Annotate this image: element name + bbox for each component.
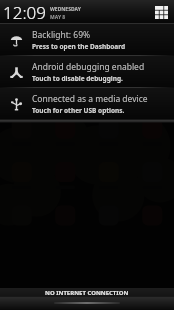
staticText: 12:09 <box>3 1 46 24</box>
button[interactable]: Android debugging enabled <box>0 56 174 87</box>
staticText: NO INTERNET CONNECTION <box>45 289 129 297</box>
staticText: Touch for other USB options. <box>32 106 125 115</box>
button[interactable]: Close notification shade <box>0 288 174 310</box>
button[interactable]: Connected as a media device <box>0 88 174 119</box>
staticText: Touch to disable debugging. <box>32 74 123 83</box>
staticText: WEDNESDAY <box>50 6 81 13</box>
staticText: MAY 8 <box>50 14 66 21</box>
staticText: Backlight: 69% <box>32 29 91 41</box>
staticText: Connected as a media device <box>32 93 148 105</box>
staticText: Press to open the Dashboard <box>32 42 126 51</box>
button[interactable]: Backlight: 69% <box>0 24 174 55</box>
staticText: Android debugging enabled <box>32 61 145 73</box>
button[interactable]: Quick settings <box>152 3 170 21</box>
